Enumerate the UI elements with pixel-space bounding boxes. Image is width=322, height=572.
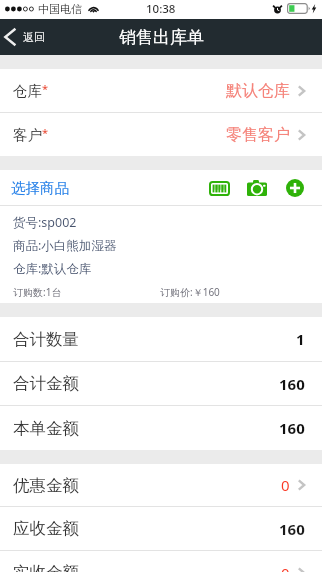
staticText: 本单金额 <box>13 418 79 439</box>
staticText: 合计金额 <box>13 373 79 394</box>
staticText: 160 <box>279 374 305 394</box>
button[interactable]: 本单金额 <box>0 406 322 450</box>
staticText: 应收金额 <box>13 518 79 539</box>
staticText: 10:38 <box>146 1 176 17</box>
button[interactable]: 合计数量 <box>0 317 322 361</box>
button[interactable]: 扫描条码 <box>207 177 231 199</box>
staticText: 160 <box>279 418 305 438</box>
button[interactable]: 选择商品 <box>11 179 69 197</box>
staticText: 商品:小白熊加湿器 <box>13 237 117 254</box>
staticText: 仓库:默认仓库 <box>13 260 92 277</box>
staticText: 返回 <box>23 30 45 44</box>
button[interactable]: 合计金额 <box>0 362 322 405</box>
button[interactable]: 实收金额 <box>0 551 322 572</box>
button[interactable]: 货号:sp002 <box>0 206 322 303</box>
staticText: 160 <box>279 519 305 539</box>
button[interactable]: 应收金额 <box>0 507 322 550</box>
button[interactable]: 客户 <box>0 113 322 156</box>
staticText: 0 <box>281 563 290 572</box>
button[interactable]: 添加商品 <box>283 177 307 199</box>
button[interactable]: 返回 <box>0 22 53 52</box>
staticText: 货号:sp002 <box>13 214 77 231</box>
staticText: 默认仓库 <box>226 81 290 101</box>
staticText: * <box>42 125 49 140</box>
staticText: 合计数量 <box>13 329 79 350</box>
staticText: 优惠金额 <box>13 475 79 496</box>
staticText: 实收金额 <box>13 562 79 572</box>
button[interactable]: 优惠金额 <box>0 464 322 506</box>
staticText: 客户 <box>13 126 42 144</box>
staticText: 销售出库单 <box>119 27 204 48</box>
staticText: 订购数:1台 <box>13 285 62 299</box>
staticText: 中国电信 <box>38 2 82 16</box>
staticText: * <box>42 81 49 96</box>
staticText: 1 <box>296 329 305 349</box>
staticText: 0 <box>281 475 290 495</box>
staticText: 订购价:￥160 <box>160 285 220 299</box>
staticText: 零售客户 <box>226 125 290 145</box>
button[interactable]: 仓库 <box>0 69 322 112</box>
staticText: 仓库 <box>13 82 42 100</box>
button[interactable]: 拍照 <box>245 177 269 199</box>
